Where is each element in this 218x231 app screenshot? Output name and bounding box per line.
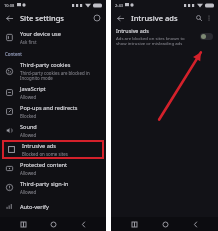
button[interactable]: More options: [204, 13, 214, 23]
button[interactable]: Home: [46, 217, 60, 231]
staticText: Blocked: [20, 113, 37, 119]
button[interactable]: Search: [194, 13, 204, 23]
staticText: Auto-verify: [20, 203, 49, 211]
staticText: Intrusive ads: [131, 13, 178, 23]
button[interactable]: Back: [188, 217, 202, 231]
button[interactable]: Recents: [127, 217, 141, 231]
button[interactable]: Home: [158, 217, 172, 231]
staticText: Allowed: [20, 189, 37, 195]
button[interactable]: Back: [76, 217, 90, 231]
button[interactable]: Third-party sign-in: [0, 178, 106, 197]
staticText: Content: [5, 51, 22, 57]
staticText: Intrusive ads: [22, 142, 56, 150]
staticText: Allowed: [20, 132, 37, 138]
button[interactable]: Recents: [16, 217, 30, 231]
staticText: 2:43: [115, 3, 123, 8]
staticText: Allowed: [20, 94, 37, 100]
button[interactable]: Sound: [0, 121, 106, 140]
staticText: Sound: [20, 123, 37, 131]
button[interactable]: Intrusive ads: [2, 140, 104, 159]
staticText: Third-party cookies: [20, 61, 71, 69]
staticText: Protected content: [20, 161, 68, 169]
staticText: Blocked on some sites: [22, 151, 68, 157]
staticText: Allowed: [20, 170, 37, 176]
staticText: Third-party sign-in: [20, 180, 69, 188]
staticText: Site settings: [20, 13, 64, 23]
staticText: Intrusive ads: [116, 27, 149, 34]
button[interactable]: Help: [92, 13, 102, 23]
staticText: 10:08: [4, 3, 15, 8]
button[interactable]: Pop-ups and redirects: [0, 102, 106, 121]
button[interactable]: Third-party cookies: [0, 59, 106, 83]
staticText: JavaScript: [20, 85, 46, 93]
button[interactable]: Back: [115, 13, 125, 23]
button[interactable]: Auto-verify: [0, 197, 106, 216]
staticText: Your device use: [20, 30, 61, 38]
button[interactable]: Intrusive ads toggle: [200, 33, 213, 40]
button[interactable]: Your device use: [0, 28, 106, 47]
staticText: Ask first: [20, 39, 37, 45]
button[interactable]: Back: [4, 13, 14, 23]
staticText: Pop-ups and redirects: [20, 104, 78, 112]
button[interactable]: JavaScript: [0, 83, 106, 102]
staticText: Third-party cookies are blocked in Incog…: [20, 70, 102, 82]
staticText: Ads are blocked on sites known to show i…: [116, 35, 196, 46]
button[interactable]: Protected content: [0, 159, 106, 178]
button[interactable]: Intrusive ads: [111, 25, 218, 49]
